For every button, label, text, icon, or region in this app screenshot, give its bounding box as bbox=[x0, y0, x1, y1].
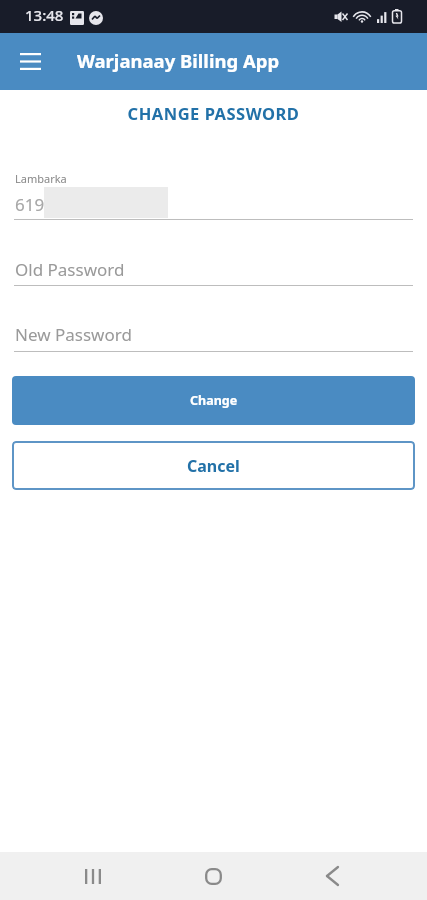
staticText: Lambarka bbox=[15, 171, 67, 186]
button[interactable]: Home bbox=[190, 856, 236, 896]
staticText: Old Password bbox=[15, 258, 125, 281]
staticText: Warjanaay Billing App bbox=[77, 48, 280, 73]
button[interactable]: Lambarka bbox=[14, 168, 413, 219]
button[interactable]: Cancel bbox=[12, 441, 415, 490]
staticText: 619 bbox=[15, 193, 45, 216]
staticText: CHANGE PASSWORD bbox=[0, 102, 427, 124]
button[interactable]: Back bbox=[309, 856, 355, 896]
button[interactable]: Open navigation menu bbox=[8, 39, 53, 84]
staticText: New Password bbox=[15, 323, 132, 346]
button[interactable]: Change bbox=[12, 376, 415, 425]
staticText: Cancel bbox=[187, 455, 240, 477]
staticText: Change bbox=[190, 392, 238, 409]
staticText: 13:48 bbox=[25, 5, 64, 25]
button[interactable]: New Password bbox=[14, 319, 413, 349]
button[interactable]: Recent apps bbox=[70, 856, 116, 896]
button[interactable]: Old Password bbox=[14, 254, 413, 284]
